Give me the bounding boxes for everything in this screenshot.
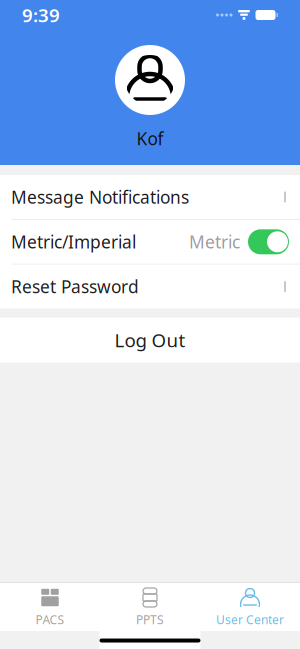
staticText: User Center — [216, 611, 284, 627]
button[interactable]: Log Out — [0, 318, 300, 363]
staticText: Metric — [189, 230, 240, 253]
staticText: Metric/Imperial — [11, 230, 136, 253]
button[interactable]: Reset Password — [0, 265, 300, 309]
staticText: 9:39 — [22, 3, 60, 27]
staticText: PACS — [35, 611, 64, 627]
staticText: PPTS — [136, 611, 164, 627]
staticText: Reset Password — [11, 275, 139, 298]
staticText: Kof — [136, 127, 163, 150]
button[interactable]: Message Notifications — [0, 175, 300, 219]
button[interactable]: User Center — [200, 583, 300, 631]
button[interactable]: Metric/Imperial — [0, 220, 300, 264]
staticText: Message Notifications — [11, 185, 189, 208]
staticText: Log Out — [114, 328, 185, 352]
button[interactable]: PACS — [0, 583, 100, 631]
button[interactable]: PPTS — [100, 583, 200, 631]
